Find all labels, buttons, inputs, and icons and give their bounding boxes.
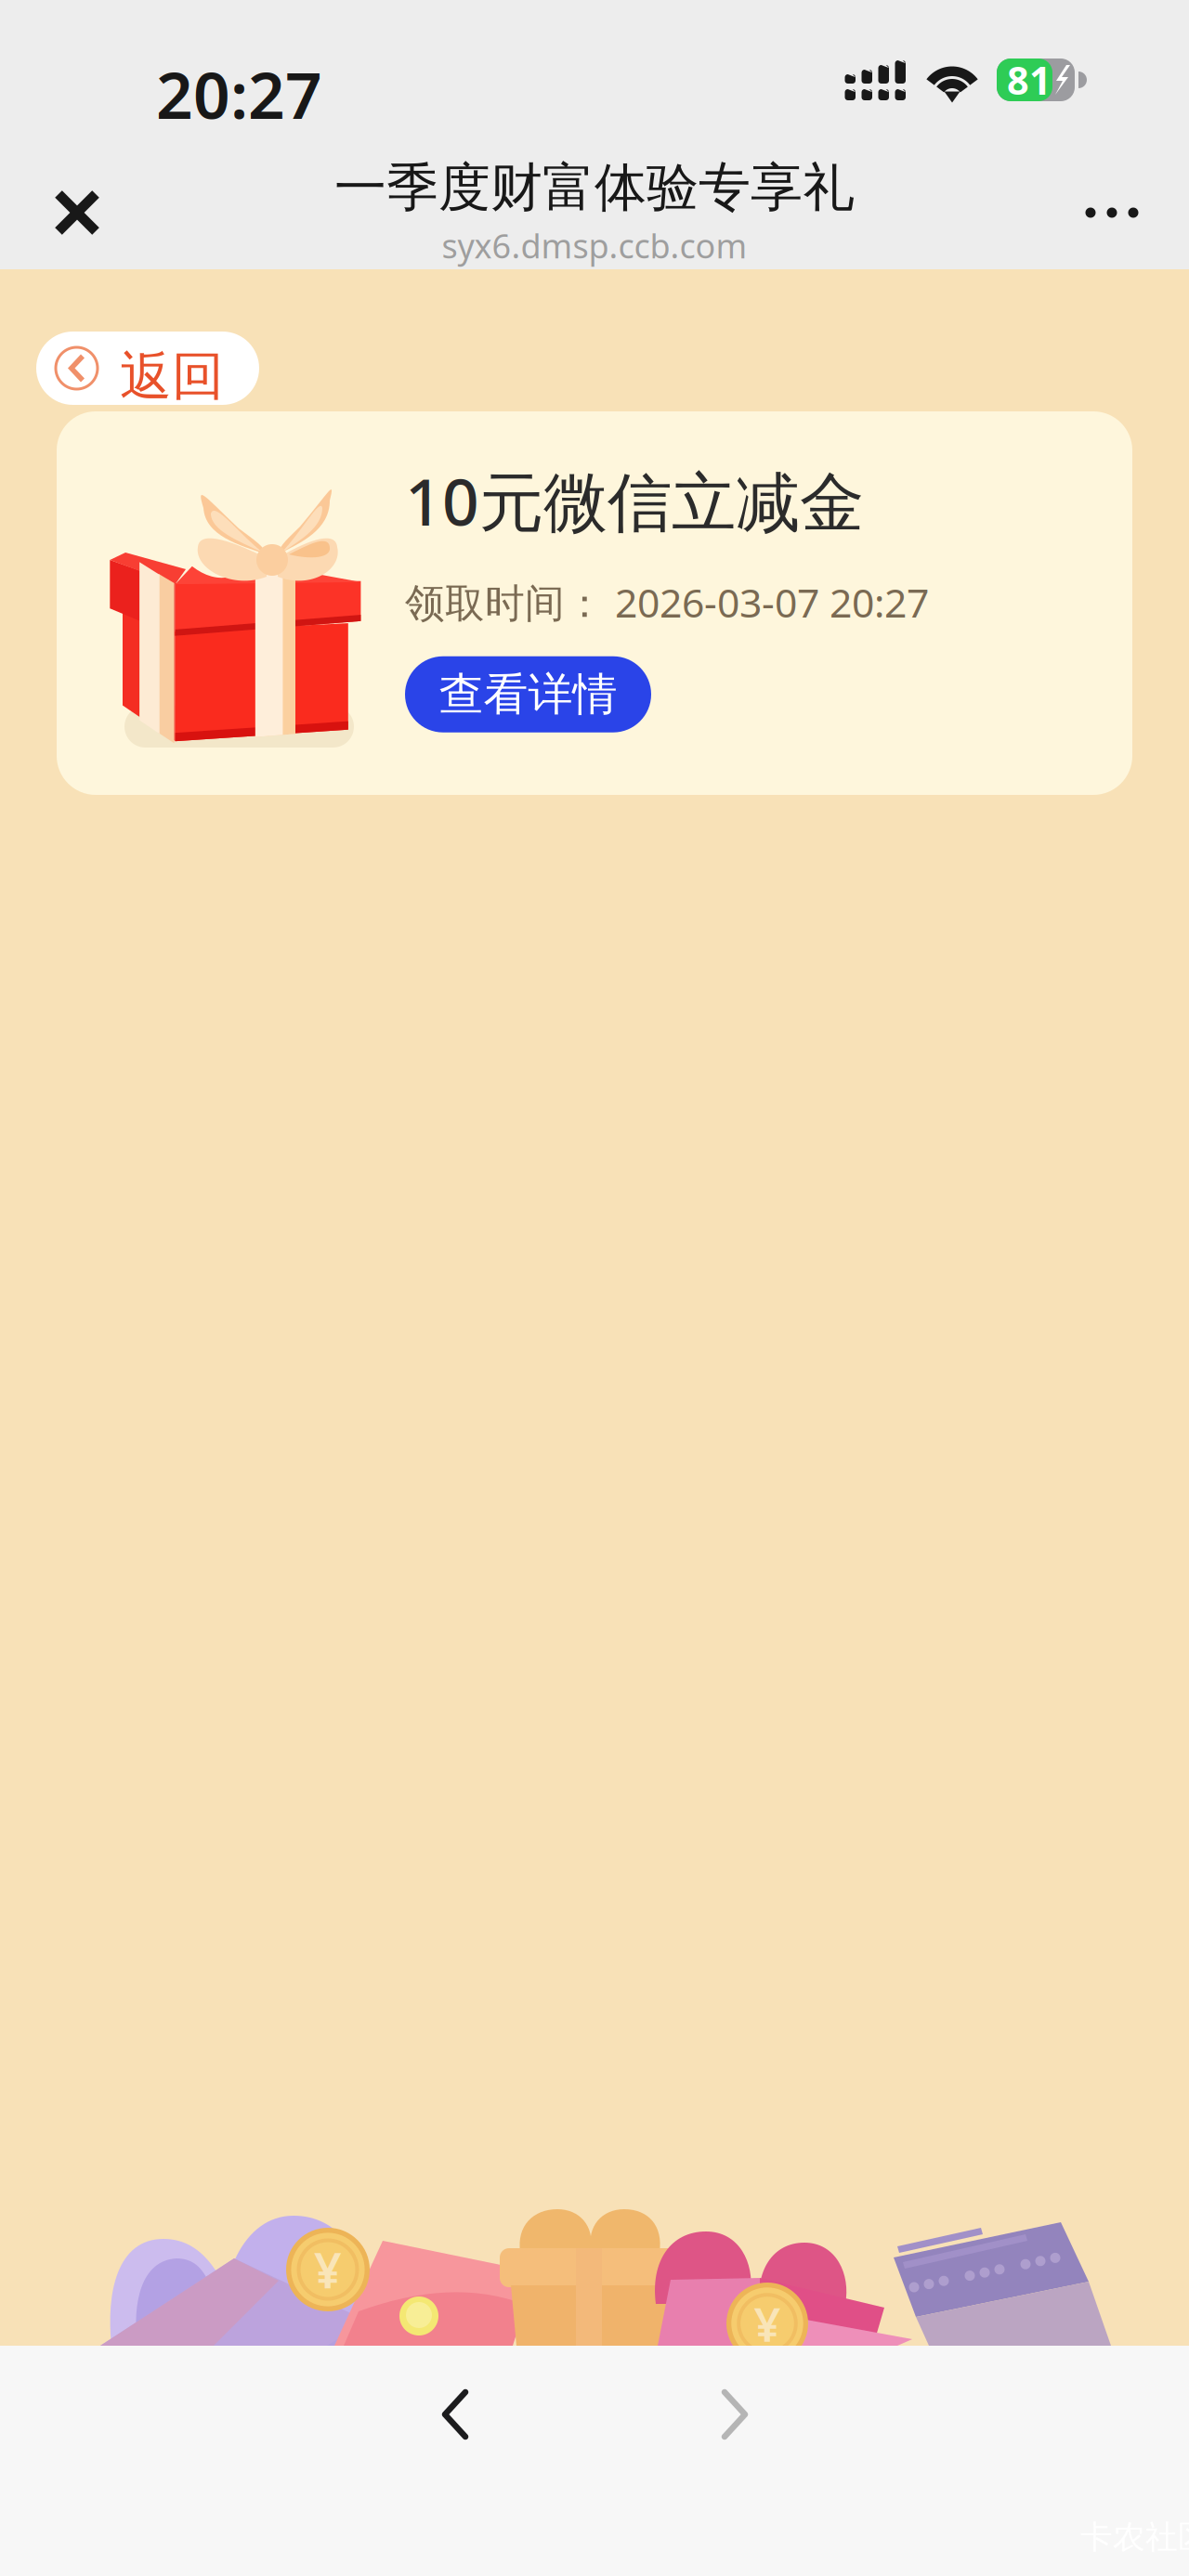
staticText: ¥ <box>314 2238 342 2302</box>
staticText: 一季度财富体验专享礼 <box>334 156 855 220</box>
staticText: 领取时间： 2026-03-07 20:27 <box>405 576 929 628</box>
staticText: syx6.dmsp.ccb.com <box>442 223 747 268</box>
button[interactable]: More <box>1061 162 1163 264</box>
staticText: 81 <box>1007 54 1052 105</box>
button[interactable]: Back <box>399 2359 511 2470</box>
button[interactable]: 返回 <box>36 332 259 405</box>
button[interactable]: Close <box>26 162 128 264</box>
staticText: ¥ <box>754 2292 781 2355</box>
staticText: 10元微信立减金 <box>405 458 864 543</box>
button[interactable]: Forward <box>679 2359 790 2470</box>
staticText: 返回 <box>120 345 224 408</box>
staticText: 20:27 <box>156 51 322 137</box>
staticText: 查看详情 <box>439 667 617 722</box>
button[interactable]: 查看详情 <box>405 656 651 732</box>
